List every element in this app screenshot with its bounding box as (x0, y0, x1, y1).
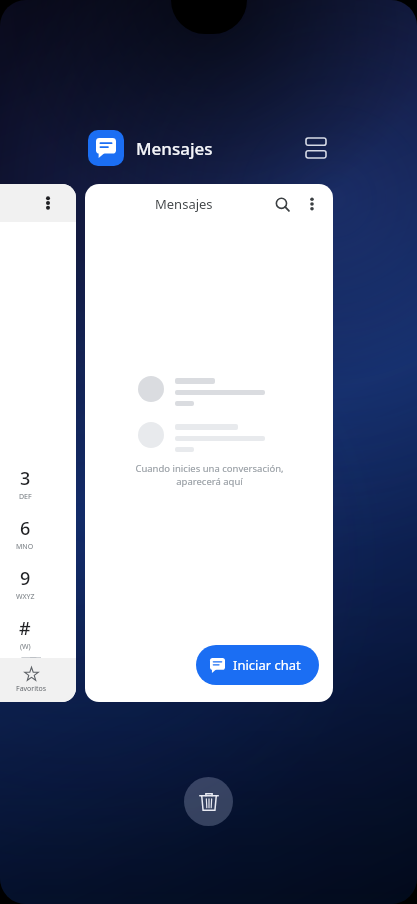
staticText: WXYZ (16, 592, 35, 602)
staticText: Mensajes (155, 195, 213, 213)
button[interactable]: More options (0, 184, 76, 702)
button[interactable]: 9 (2, 566, 48, 602)
button[interactable]: Search (269, 191, 295, 217)
staticText: # (19, 616, 31, 641)
staticText: 3 (20, 466, 31, 491)
staticText: 9 (20, 566, 31, 591)
button[interactable]: 3 (2, 466, 48, 502)
button[interactable]: Split screen (296, 128, 336, 168)
button[interactable]: # (2, 616, 48, 652)
button[interactable]: Iniciar chat (196, 645, 319, 685)
staticText: (W) (20, 642, 31, 652)
button[interactable]: More options (301, 193, 323, 215)
button[interactable]: Clear all (184, 777, 233, 826)
staticText: Favoritos (16, 684, 47, 694)
staticText: 6 (20, 516, 31, 541)
button[interactable]: Favoritos (16, 667, 47, 694)
button[interactable]: More options (36, 191, 60, 215)
staticText: Mensajes (136, 137, 213, 160)
button[interactable]: Mensajes app icon (88, 130, 124, 166)
button[interactable]: Mensajes (85, 184, 333, 702)
staticText: Cuando inicies una conversación, aparece… (135, 462, 284, 488)
button[interactable]: 6 (2, 516, 48, 552)
staticText: MNO (16, 542, 34, 552)
staticText: DEF (19, 492, 32, 502)
staticText: Iniciar chat (233, 656, 301, 674)
